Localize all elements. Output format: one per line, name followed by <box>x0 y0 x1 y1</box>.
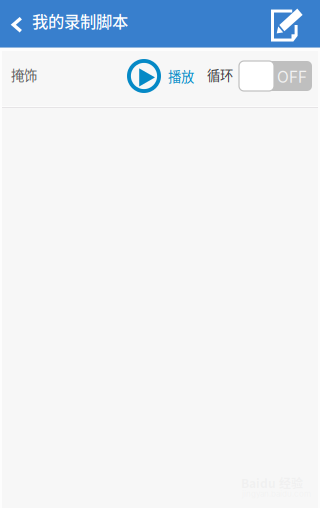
staticText: 播放 <box>168 66 194 86</box>
button[interactable]: 我的录制脚本 <box>0 0 138 42</box>
button[interactable]: 循环 <box>201 55 239 94</box>
button[interactable]: Loop off <box>234 56 317 96</box>
staticText: 掩饰 <box>11 65 37 84</box>
button[interactable]: Compose <box>263 1 311 49</box>
staticText: 我的录制脚本 <box>32 9 128 33</box>
button[interactable]: 掩饰 <box>3 55 45 94</box>
staticText: OFF <box>277 68 307 87</box>
staticText: 循环 <box>207 65 233 84</box>
button[interactable]: 播放 <box>127 54 194 98</box>
